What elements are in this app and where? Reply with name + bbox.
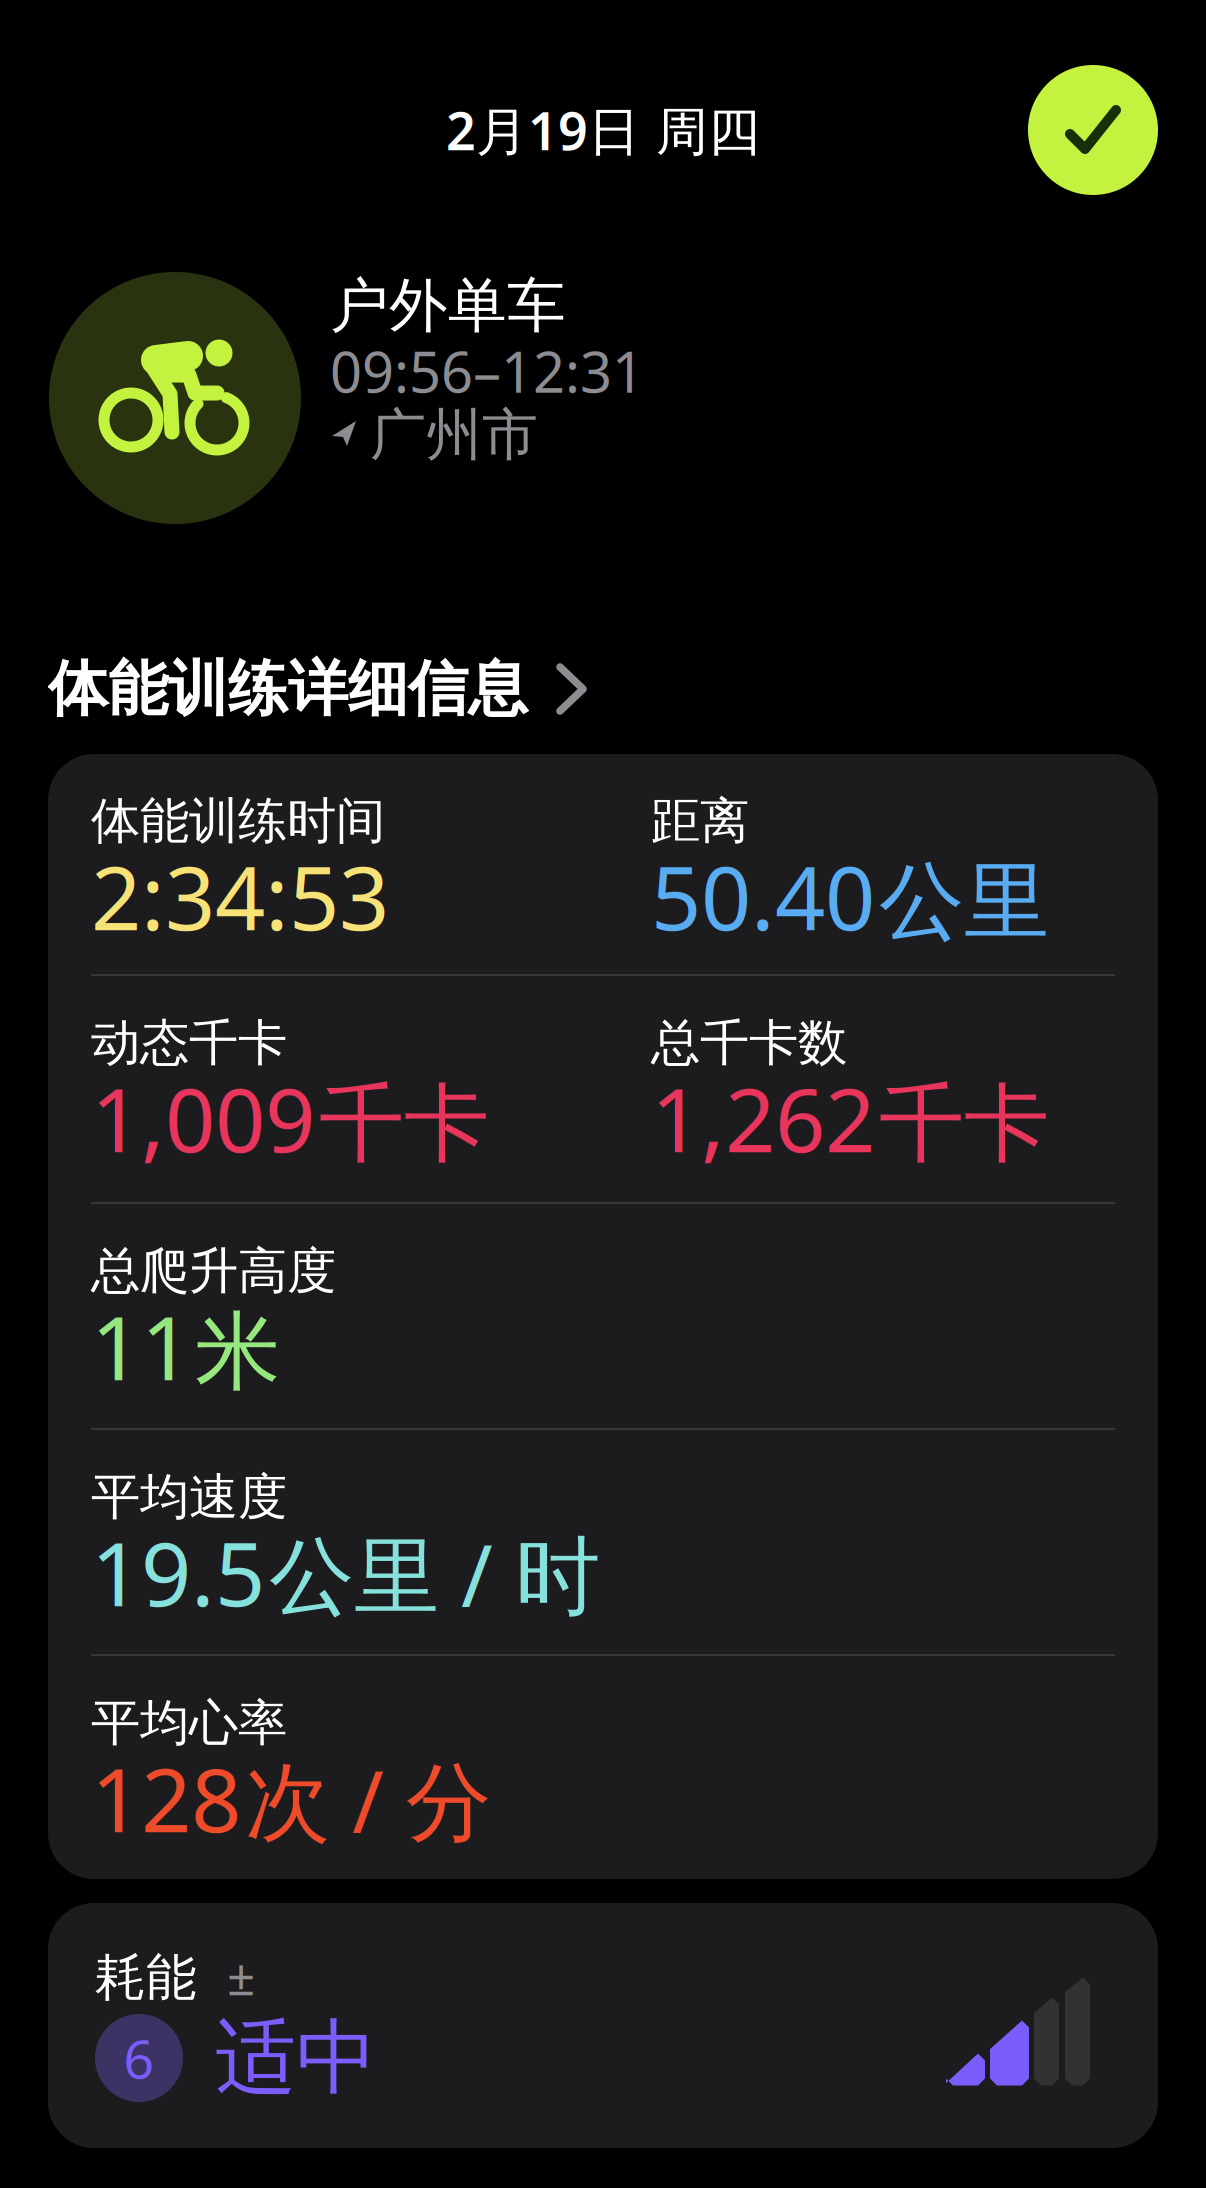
staticText: 千卡 [319,1072,489,1176]
staticText: 距离 [651,791,749,851]
button[interactable]: 体能训练详细信息 [0,654,1206,724]
staticText: 128 [91,1740,241,1856]
staticText: ± [227,1943,255,2009]
staticText: 1,009 [91,1060,315,1176]
staticText: 09:56–12:31 [330,334,644,408]
button[interactable]: 完成 [1028,65,1158,195]
staticText: 米 [195,1300,280,1404]
staticText: 千卡 [879,1072,1049,1176]
staticText: 次 / 分 [245,1743,491,1856]
staticText: 11 [91,1288,191,1404]
staticText: 2:34:53 [91,838,389,954]
staticText: 6 [123,2023,154,2093]
staticText: 耗能 [95,1946,197,2009]
staticText: 户外单车 [330,270,566,342]
staticText: 19.5 [91,1514,265,1630]
staticText: 平均心率 [91,1693,287,1753]
staticText: 1,262 [651,1060,875,1176]
staticText: 50.40 [651,838,875,954]
staticText: 平均速度 [91,1467,287,1527]
staticText: 体能训练详细信息 [48,652,528,726]
staticText: 适中 [215,2008,377,2108]
staticText: 广州市 [370,401,538,469]
staticText: 2月19日 周四 [446,95,760,165]
staticText: 总爬升高度 [91,1241,336,1301]
staticText: 总千卡数 [651,1013,847,1073]
staticText: 公里 / 时 [269,1517,600,1630]
staticText: 公里 [879,850,1049,954]
staticText: 动态千卡 [91,1013,287,1073]
staticText: 体能训练时间 [91,791,385,851]
